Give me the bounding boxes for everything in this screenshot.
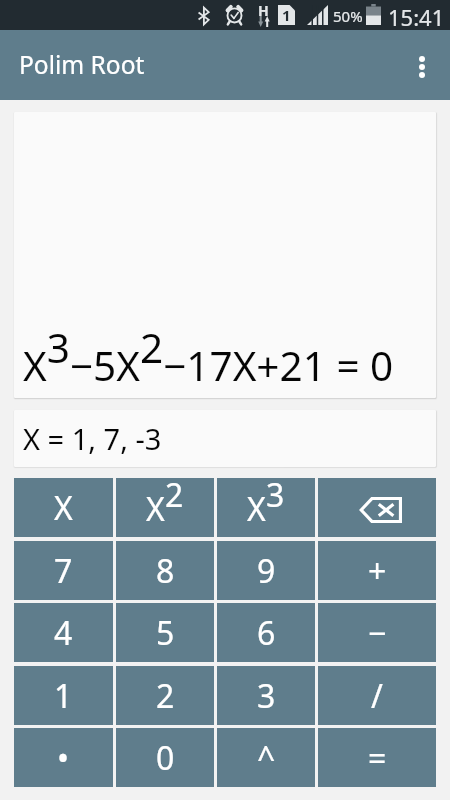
button[interactable]: Minus <box>318 603 436 662</box>
button[interactable]: Equals <box>318 728 436 787</box>
button[interactable]: 0 <box>116 728 214 787</box>
staticText: = <box>368 736 387 780</box>
button[interactable]: 1 <box>14 666 113 725</box>
staticText: 50% <box>333 6 363 26</box>
button[interactable]: 6 <box>217 603 315 662</box>
staticText: 6 <box>257 611 276 655</box>
staticText: X <box>247 487 266 531</box>
staticText: H <box>258 1 269 20</box>
button[interactable]: 2 <box>116 666 214 725</box>
button[interactable]: Backspace <box>318 478 436 537</box>
staticText: 3 <box>266 473 285 517</box>
staticText: 15:41 <box>388 2 445 32</box>
staticText: / <box>371 674 383 718</box>
staticText: X = 1, 7, -3 <box>23 419 162 458</box>
button[interactable]: 3 <box>217 666 315 725</box>
button[interactable]: 4 <box>14 603 113 662</box>
staticText: Polim Root <box>19 48 145 81</box>
staticText: ^ <box>257 736 276 780</box>
staticText: X <box>146 487 165 531</box>
button[interactable]: X cubed <box>217 478 315 537</box>
staticText: 4 <box>54 611 73 655</box>
button[interactable]: Plus <box>318 541 436 600</box>
staticText: 3 <box>257 674 276 718</box>
button[interactable]: X <box>14 478 113 537</box>
button[interactable]: Power <box>217 728 315 787</box>
staticText: 5 <box>156 611 175 655</box>
staticText: 2 <box>156 674 175 718</box>
staticText: − <box>368 611 387 655</box>
staticText: • <box>57 736 70 780</box>
staticText: 7 <box>54 549 73 593</box>
staticText: X3−5X2−17X+21 = 0 <box>23 320 394 393</box>
staticText: 0 <box>156 736 175 780</box>
staticText: + <box>368 549 387 593</box>
button[interactable]: 5 <box>116 603 214 662</box>
staticText: X <box>54 486 73 530</box>
button[interactable]: 7 <box>14 541 113 600</box>
staticText: 9 <box>257 549 276 593</box>
button[interactable]: Decimal point <box>14 728 113 787</box>
staticText: 8 <box>156 549 175 593</box>
button[interactable]: Divide <box>318 666 436 725</box>
button[interactable]: More options <box>394 43 446 90</box>
staticText: 2 <box>165 473 184 517</box>
button[interactable]: X squared <box>116 478 214 537</box>
staticText: 1 <box>282 5 291 25</box>
staticText: 1 <box>54 674 73 718</box>
button[interactable]: 8 <box>116 541 214 600</box>
button[interactable]: 9 <box>217 541 315 600</box>
